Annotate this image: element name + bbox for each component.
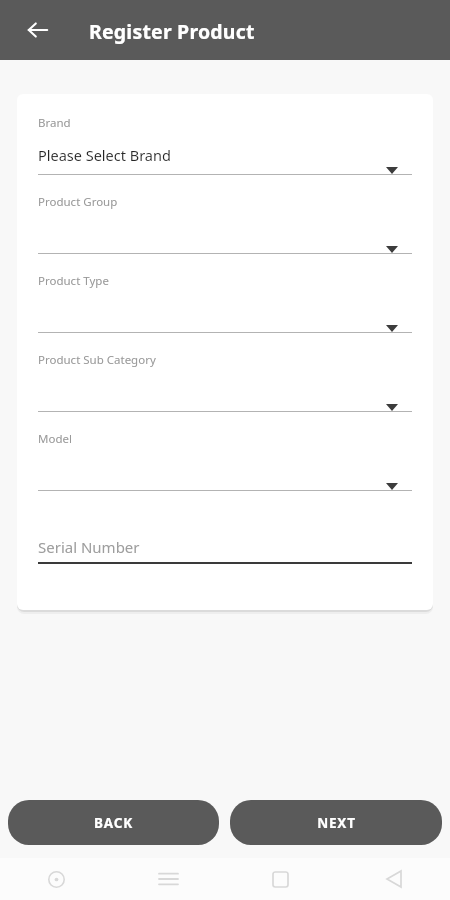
staticText: NEXT	[317, 814, 356, 832]
button[interactable]: Brand	[38, 115, 412, 175]
staticText: Model	[38, 431, 72, 447]
staticText: Product Sub Category	[38, 352, 156, 368]
button[interactable]: Back	[16, 8, 60, 52]
staticText: Please Select Brand	[38, 145, 171, 165]
staticText: BACK	[94, 814, 133, 832]
button[interactable]: Back	[337, 858, 450, 900]
button[interactable]: Product Sub Category	[38, 352, 412, 412]
button[interactable]: Assistant	[0, 858, 112, 900]
button[interactable]: NEXT	[230, 800, 442, 845]
staticText: Brand	[38, 115, 71, 131]
button[interactable]: Serial Number	[38, 532, 412, 564]
button[interactable]: Recent apps	[112, 858, 224, 900]
button[interactable]: Product Group	[38, 194, 412, 254]
button[interactable]: Product Type	[38, 273, 412, 333]
button[interactable]: Home	[224, 858, 337, 900]
staticText: Serial Number	[38, 537, 140, 557]
staticText: Product Group	[38, 194, 118, 210]
button[interactable]: Model	[38, 431, 412, 491]
button[interactable]: BACK	[8, 800, 219, 845]
staticText: Product Type	[38, 273, 109, 289]
staticText: Register Product	[89, 18, 255, 45]
